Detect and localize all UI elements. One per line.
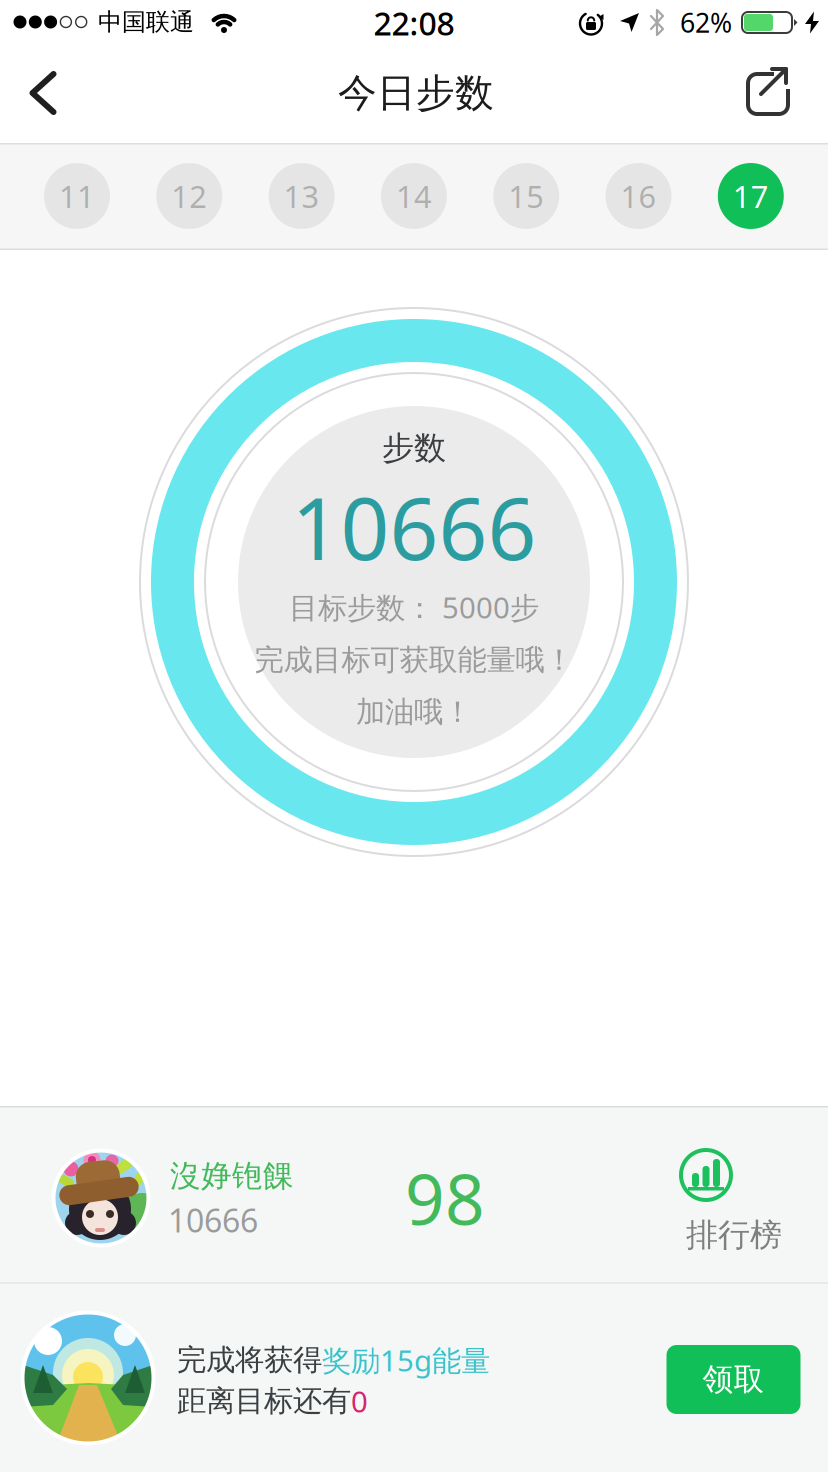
button[interactable]: 11 (44, 163, 110, 229)
staticText: 完成将获得 (177, 1342, 322, 1378)
staticText: 奖励15g能量 (322, 1340, 490, 1379)
staticText: 步数 (382, 428, 446, 468)
staticText: 目标步数： 5000步 (289, 587, 539, 626)
staticText: 12 (171, 176, 207, 216)
staticText: 15 (508, 176, 544, 216)
staticText: 14 (396, 176, 432, 216)
staticText: 加油哦！ (356, 694, 472, 730)
button[interactable]: 14 (381, 163, 447, 229)
staticText: 今日步数 (338, 69, 494, 117)
button[interactable]: 12 (156, 163, 222, 229)
button[interactable]: 13 (269, 163, 335, 229)
staticText: 10666 (291, 470, 536, 584)
button[interactable]: Back (18, 60, 67, 126)
staticText: 排行榜 (686, 1215, 782, 1255)
staticText: 完成目标可获取能量哦！ (254, 642, 573, 678)
staticText: 16 (620, 176, 656, 216)
staticText: 领取 (702, 1361, 764, 1398)
staticText: 中国联通 (98, 7, 194, 37)
staticText: 98 (405, 1152, 485, 1244)
staticText: 0 (351, 1381, 368, 1420)
staticText: 沒婙铇餜 (170, 1157, 294, 1195)
button[interactable]: 16 (605, 163, 671, 229)
button[interactable]: 17 (718, 163, 784, 229)
staticText: 17 (733, 176, 769, 216)
button[interactable]: Share (744, 68, 794, 118)
staticText: 13 (284, 176, 320, 216)
staticText: 10666 (168, 1199, 258, 1241)
staticText: 11 (59, 176, 95, 216)
staticText: 距离目标还有 (177, 1383, 351, 1419)
staticText: 62% (680, 5, 732, 40)
button[interactable]: 15 (493, 163, 559, 229)
staticText: 22:08 (373, 2, 454, 44)
button[interactable]: 领取 (666, 1345, 800, 1414)
button[interactable]: 排行榜 (640, 1137, 828, 1267)
